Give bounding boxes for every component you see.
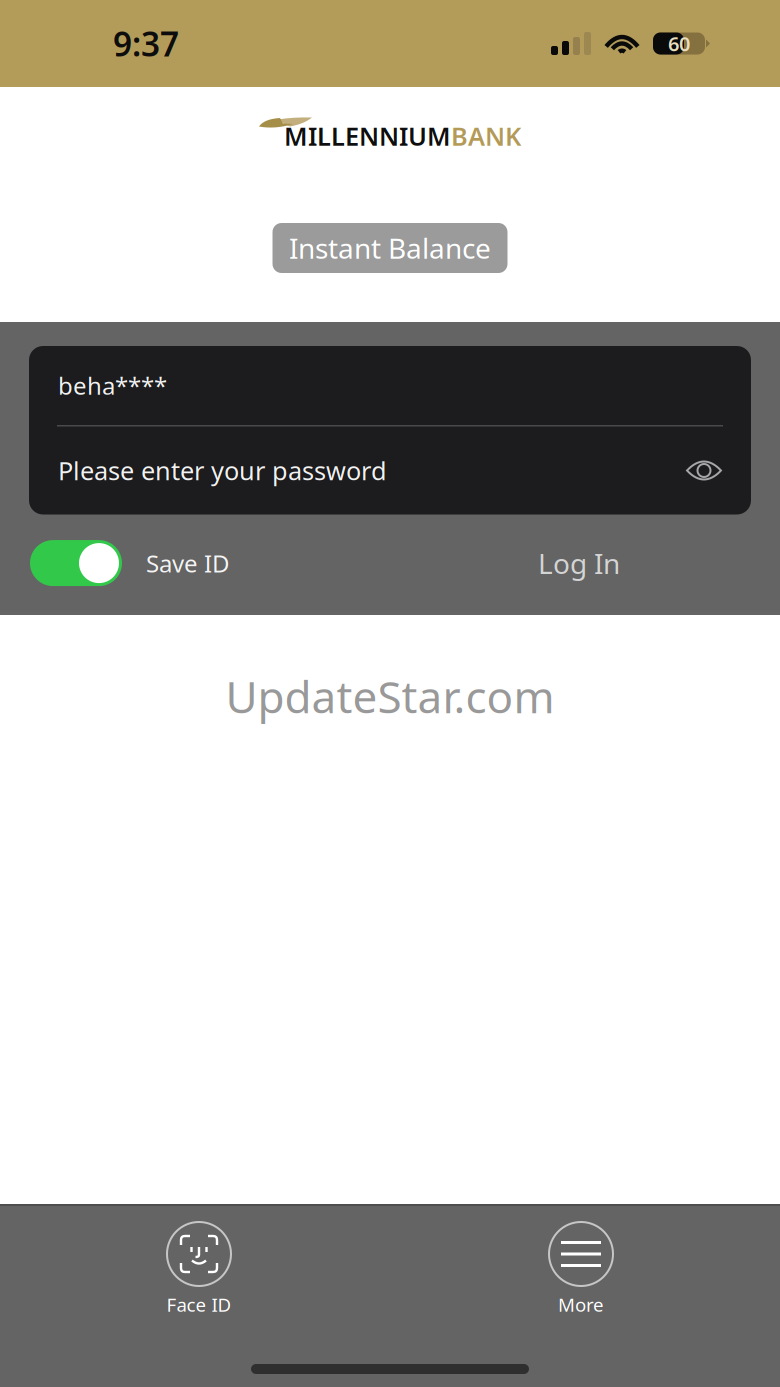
button[interactable]: Log In [514, 531, 644, 595]
button[interactable]: Face ID [144, 1222, 254, 1317]
button[interactable]: Save ID [30, 540, 230, 586]
staticText: BANK [451, 119, 521, 153]
button[interactable]: Instant Balance [272, 223, 507, 273]
staticText: beha**** [58, 370, 167, 401]
staticText: Save ID [146, 547, 230, 579]
button[interactable]: More [526, 1222, 636, 1317]
staticText: 9:37 [113, 21, 179, 66]
button[interactable]: Show password [686, 458, 722, 482]
staticText: Instant Balance [289, 229, 491, 267]
staticText: Log In [538, 544, 620, 582]
staticText: More [558, 1292, 604, 1317]
staticText: UpdateStar.com [225, 667, 554, 725]
staticText: Please enter your password [58, 454, 387, 487]
staticText: 60 [668, 30, 690, 57]
staticText: MILLENNIUM [284, 119, 451, 153]
staticText: Face ID [166, 1292, 231, 1317]
